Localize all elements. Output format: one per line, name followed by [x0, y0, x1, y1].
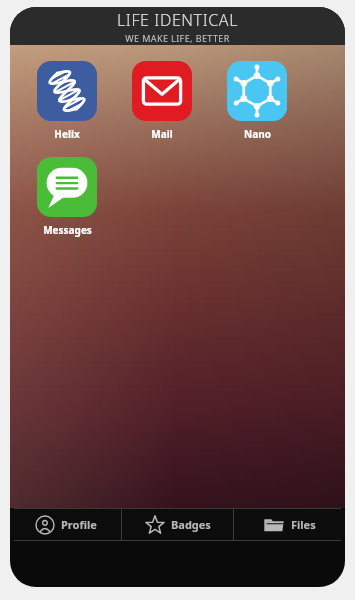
- staticText: Profile: [61, 517, 97, 532]
- staticText: WE MAKE LIFE, BETTER: [125, 32, 230, 44]
- staticText: Mail: [151, 127, 173, 141]
- staticText: Helix: [54, 127, 80, 141]
- button[interactable]: Profile: [10, 508, 121, 541]
- button[interactable]: Files: [234, 508, 345, 541]
- staticText: LIFE IDENTICAL: [117, 9, 238, 31]
- other: Badges: [145, 515, 165, 535]
- button[interactable]: Badges: [122, 508, 233, 541]
- staticText: Badges: [171, 517, 211, 532]
- staticText: Files: [291, 517, 316, 532]
- other: Profile: [35, 515, 55, 535]
- button[interactable]: Nano: [218, 59, 296, 143]
- button[interactable]: Messages: [28, 155, 106, 239]
- staticText: Messages: [43, 223, 92, 237]
- other: Files: [263, 514, 285, 536]
- button[interactable]: Mail: [123, 59, 201, 143]
- staticText: Nano: [244, 127, 271, 141]
- button[interactable]: Helix: [28, 59, 106, 143]
